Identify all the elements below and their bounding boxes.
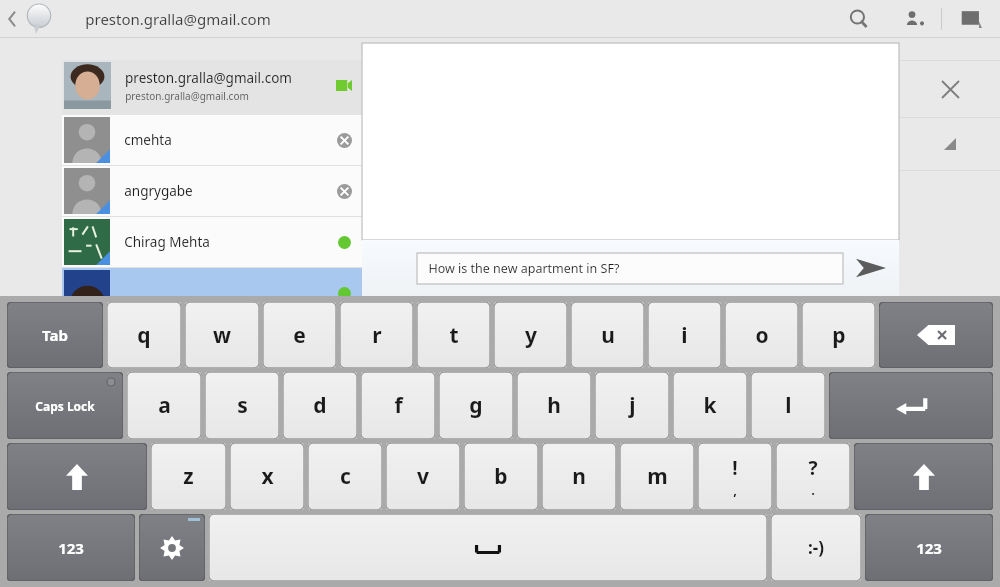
staticText: preston.gralla@gmail.com	[125, 69, 292, 87]
button[interactable]: Tab	[7, 302, 103, 368]
staticText: !	[732, 455, 738, 481]
staticText: y	[525, 321, 537, 350]
staticText: ?	[808, 455, 818, 481]
staticText: j	[629, 391, 636, 420]
button[interactable]: t	[417, 302, 490, 368]
button[interactable]: c	[308, 443, 382, 510]
button[interactable]: u	[571, 302, 644, 368]
button[interactable]: angrygabe	[62, 166, 365, 216]
button[interactable]: ?	[776, 443, 850, 510]
staticText: angrygabe	[124, 182, 193, 200]
button[interactable]: cmehta	[62, 115, 365, 165]
staticText: d	[313, 391, 327, 420]
button[interactable]: g	[439, 372, 513, 439]
staticText: t	[449, 321, 459, 350]
button[interactable]: k	[673, 372, 747, 439]
staticText: q	[137, 321, 151, 350]
staticText: z	[183, 462, 194, 491]
staticText: u	[601, 321, 615, 350]
button[interactable]: r	[340, 302, 413, 368]
button[interactable]: Up	[0, 4, 61, 34]
button[interactable]: Close chat	[900, 61, 1000, 117]
staticText: cmehta	[124, 131, 172, 149]
button[interactable]: 123	[865, 514, 993, 581]
button[interactable]: Keyboard settings	[139, 514, 205, 581]
button[interactable]: m	[620, 443, 694, 510]
staticText: f	[394, 391, 403, 420]
staticText: b	[494, 462, 508, 491]
staticText: x	[261, 462, 274, 491]
button[interactable]: q	[107, 302, 181, 368]
button[interactable]: s	[205, 372, 279, 439]
button[interactable]: z	[151, 443, 226, 510]
button[interactable]: j	[595, 372, 669, 439]
button[interactable]: f	[361, 372, 435, 439]
button[interactable]: d	[283, 372, 357, 439]
staticText: r	[372, 321, 382, 350]
button[interactable]: w	[185, 302, 259, 368]
button[interactable]: Send	[843, 240, 899, 296]
button[interactable]: !	[698, 443, 772, 510]
button[interactable]: Shift	[7, 443, 147, 510]
staticText: Chirag Mehta	[124, 233, 210, 251]
staticText: 123	[916, 538, 942, 558]
button[interactable]: Search	[831, 0, 887, 38]
staticText: p	[832, 321, 846, 350]
button[interactable]: More options	[942, 0, 1000, 38]
staticText: Caps Lock	[35, 398, 95, 414]
staticText: preston.gralla@gmail.com	[125, 89, 249, 103]
button[interactable]: Enter	[829, 372, 993, 439]
staticText: .	[811, 481, 815, 499]
staticText: v	[417, 462, 429, 491]
staticText: c	[340, 462, 351, 491]
button[interactable]: b	[464, 443, 538, 510]
button[interactable]: 123	[7, 514, 135, 581]
staticText: a	[158, 391, 171, 420]
button[interactable]: h	[517, 372, 591, 439]
button[interactable]: preston.gralla@gmail.com	[62, 60, 365, 111]
staticText: :-)	[808, 536, 824, 559]
button[interactable]: Shift	[854, 443, 993, 510]
button[interactable]: Backspace	[879, 302, 993, 368]
button[interactable]: p	[802, 302, 875, 368]
staticText: e	[293, 321, 306, 350]
staticText: i	[681, 321, 688, 350]
staticText: ,	[733, 481, 737, 499]
button[interactable]: o	[725, 302, 798, 368]
button[interactable]: l	[751, 372, 825, 439]
staticText: w	[213, 321, 231, 350]
staticText: g	[469, 391, 483, 420]
button[interactable]: Space	[209, 514, 767, 581]
button[interactable]: i	[648, 302, 721, 368]
staticText: h	[547, 391, 561, 420]
button[interactable]: Chirag Mehta	[62, 217, 365, 267]
staticText: Tab	[42, 325, 68, 345]
button[interactable]: y	[494, 302, 567, 368]
staticText: 123	[58, 538, 84, 558]
staticText: o	[755, 321, 769, 350]
button[interactable]: How is the new apartment in SF?	[417, 253, 843, 284]
button[interactable]: a	[127, 372, 201, 439]
staticText: preston.gralla@gmail.com	[85, 9, 271, 29]
button[interactable]: n	[542, 443, 616, 510]
button[interactable]: Add friend	[887, 0, 941, 38]
button[interactable]: Collapse	[900, 118, 1000, 170]
staticText: l	[785, 391, 792, 420]
staticText: k	[703, 391, 717, 420]
button[interactable]: v	[386, 443, 460, 510]
button[interactable]: x	[230, 443, 304, 510]
button[interactable]: :-)	[771, 514, 861, 581]
staticText: How is the new apartment in SF?	[428, 260, 620, 277]
staticText: n	[572, 462, 586, 491]
button[interactable]	[62, 268, 365, 318]
staticText: s	[237, 391, 248, 420]
button[interactable]: Caps Lock	[7, 372, 123, 439]
button[interactable]: e	[263, 302, 336, 368]
staticText: m	[647, 462, 668, 491]
